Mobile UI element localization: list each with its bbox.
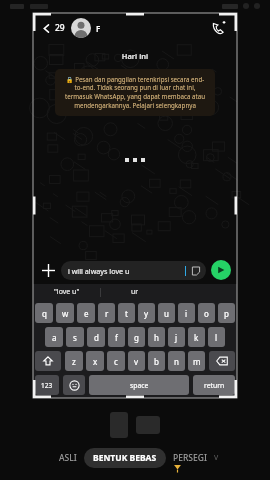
button[interactable]: j — [168, 327, 185, 347]
button[interactable]: y — [138, 303, 155, 323]
button[interactable]: "love u" — [33, 287, 100, 297]
button[interactable]: r — [98, 303, 115, 323]
button[interactable]: Shift — [35, 351, 61, 371]
staticText: PERSEGI — [173, 452, 207, 464]
staticText: BENTUK BEBAS — [93, 452, 157, 464]
button[interactable]: z — [65, 351, 83, 371]
staticText: h — [154, 332, 159, 343]
staticText: x — [93, 356, 98, 367]
staticText: k — [194, 332, 199, 343]
button[interactable]: m — [188, 351, 205, 371]
staticText: 123 — [41, 381, 53, 390]
button[interactable]: a — [45, 327, 63, 347]
staticText: s — [73, 332, 77, 343]
staticText: 🔒 Pesan dan panggilan terenkripsi secara… — [62, 75, 208, 110]
staticText: p — [224, 308, 229, 319]
staticText: a — [52, 332, 57, 343]
staticText: l — [215, 332, 218, 343]
staticText: d — [94, 332, 99, 343]
button[interactable]: k — [188, 327, 205, 347]
button[interactable]: d — [87, 327, 105, 347]
button[interactable]: w — [56, 303, 74, 323]
button[interactable]: Backspace — [209, 351, 235, 371]
button[interactable]: Landscape — [136, 416, 160, 434]
staticText: V — [214, 453, 219, 463]
button[interactable]: v — [128, 351, 145, 371]
button[interactable]: BENTUK BEBAS — [84, 448, 166, 468]
staticText: m — [193, 356, 201, 367]
button[interactable]: Emoji — [63, 375, 85, 395]
button[interactable]: i will always love u — [61, 261, 206, 280]
button[interactable]: PERSEGI — [166, 448, 214, 468]
button[interactable]: Send — [211, 260, 231, 280]
staticText: ur — [131, 287, 139, 297]
staticText: o — [204, 308, 209, 319]
button[interactable]: p — [218, 303, 235, 323]
staticText: Hari ini — [33, 51, 237, 61]
staticText: y — [144, 308, 149, 319]
button[interactable]: space — [89, 375, 189, 395]
staticText: b — [154, 356, 159, 367]
button[interactable]: s — [66, 327, 84, 347]
staticText: n — [174, 356, 179, 367]
button[interactable]: 123 — [35, 375, 59, 395]
button[interactable]: ASLI — [52, 448, 84, 468]
staticText: w — [62, 308, 69, 319]
button[interactable]: i — [178, 303, 195, 323]
button[interactable]: x — [86, 351, 104, 371]
button[interactable]: F — [71, 18, 209, 38]
staticText: v — [134, 356, 139, 367]
button[interactable]: h — [148, 327, 165, 347]
staticText: 29 — [55, 22, 65, 34]
button[interactable]: n — [168, 351, 185, 371]
button[interactable]: q — [35, 303, 53, 323]
button[interactable]: Voice call — [209, 18, 229, 38]
button[interactable]: l — [208, 327, 225, 347]
button[interactable]: 29 — [39, 18, 67, 38]
button[interactable]: Attach — [39, 261, 57, 279]
staticText: q — [42, 308, 47, 319]
button[interactable]: o — [198, 303, 215, 323]
staticText: j — [175, 332, 178, 343]
button[interactable]: g — [128, 327, 145, 347]
button[interactable]: f — [108, 327, 125, 347]
staticText: g — [134, 332, 139, 343]
button[interactable]: c — [107, 351, 125, 371]
staticText: space — [130, 381, 149, 390]
staticText: i — [185, 308, 188, 319]
button[interactable]: 🔒 Pesan dan panggilan terenkripsi secara… — [55, 69, 215, 116]
staticText: u — [164, 308, 169, 319]
staticText: e — [84, 308, 89, 319]
staticText: return — [204, 381, 225, 390]
button[interactable]: e — [77, 303, 95, 323]
staticText: ASLI — [59, 452, 77, 464]
staticText: "love u" — [54, 287, 80, 297]
staticText: i will always love u — [68, 266, 185, 276]
button[interactable]: b — [148, 351, 165, 371]
staticText: r — [105, 308, 109, 319]
button[interactable]: u — [158, 303, 175, 323]
staticText: t — [125, 308, 128, 319]
staticText: F — [96, 23, 101, 34]
button[interactable]: t — [118, 303, 135, 323]
button[interactable]: return — [193, 375, 235, 395]
staticText: z — [72, 356, 76, 367]
staticText: f — [115, 332, 118, 343]
staticText: c — [114, 356, 118, 367]
button[interactable]: ur — [101, 287, 169, 297]
